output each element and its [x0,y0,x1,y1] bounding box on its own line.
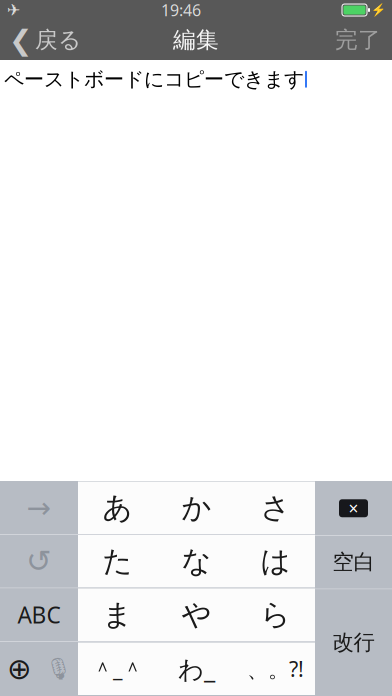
button[interactable]: Next candidate [0,481,78,534]
staticText: → [26,491,51,524]
staticText: な [181,543,211,579]
staticText: ペーストボードにコピーできます [4,67,304,92]
button[interactable]: 、。?! [236,642,315,695]
staticText: × [348,497,358,520]
button[interactable]: Delete [315,481,392,535]
staticText: 戻る [35,26,81,54]
button[interactable]: ら [236,588,315,641]
button[interactable]: Undo [0,535,78,587]
staticText: 完了 [335,26,381,54]
button[interactable]: ABC keyboard [0,588,78,641]
staticText: や [181,597,211,633]
staticText: ❮ [9,24,32,56]
button[interactable]: ❮ [0,20,89,60]
button[interactable]: Switch keyboard [0,642,39,695]
button[interactable]: さ [236,481,315,534]
staticText: さ [260,490,290,526]
staticText: わ_ [178,652,215,685]
staticText: ら [260,597,290,633]
button[interactable]: か [157,481,236,534]
staticText: た [102,543,132,579]
button[interactable]: Dictation [39,642,78,695]
staticText: ⊕ [7,652,32,685]
button[interactable]: 改行 [315,589,392,695]
staticText: ✈ [7,1,20,19]
staticText: か [181,490,211,526]
staticText: 19:46 [161,0,201,21]
staticText: ABC [17,600,60,630]
staticText: 、。?! [247,654,304,683]
button[interactable]: わ_ [157,642,236,695]
button[interactable]: ＾_＾ [78,642,157,695]
staticText: ま [102,597,132,633]
staticText: あ [102,490,132,526]
staticText: 改行 [332,629,374,656]
staticText: ↺ [26,544,52,579]
staticText: ＾_＾ [92,654,143,683]
button[interactable]: ま [78,588,157,641]
button[interactable]: は [236,535,315,587]
staticText: 🎙 [45,657,72,681]
button[interactable]: や [157,588,236,641]
staticText: 空白 [332,549,374,575]
staticText: ⚡ [371,3,386,17]
button[interactable]: な [157,535,236,587]
button[interactable]: 空白 [315,536,392,588]
button[interactable]: た [78,535,157,587]
button[interactable]: 完了 [324,20,392,60]
button[interactable]: あ [78,481,157,534]
staticText: 編集 [173,26,219,54]
staticText: は [260,543,290,579]
